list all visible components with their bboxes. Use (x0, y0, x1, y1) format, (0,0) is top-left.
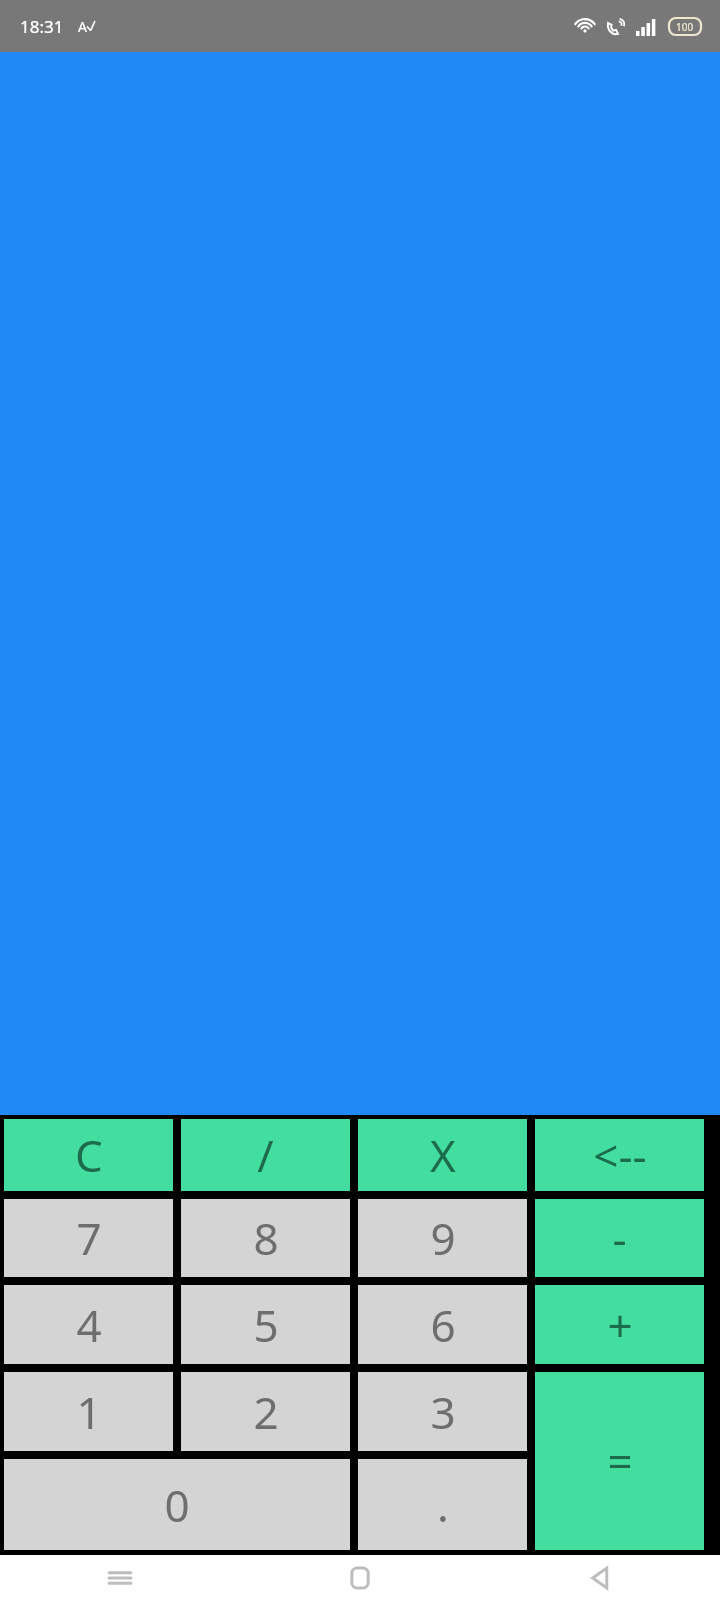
staticText: 7 (76, 1208, 102, 1268)
staticText: / (257, 1125, 274, 1185)
button[interactable]: Back (480, 1555, 720, 1600)
button[interactable]: 5 (181, 1285, 350, 1364)
staticText: C (75, 1125, 103, 1185)
button[interactable]: 2 (181, 1372, 350, 1451)
staticText: 4 (76, 1295, 102, 1355)
staticText: 1 (76, 1382, 102, 1442)
button[interactable]: X (358, 1119, 527, 1191)
staticText: = (607, 1431, 633, 1491)
staticText: 18:31 (20, 15, 64, 38)
button[interactable]: / (181, 1119, 350, 1191)
staticText: . (437, 1475, 449, 1535)
button[interactable]: Home (240, 1555, 480, 1600)
staticText: <-- (593, 1125, 647, 1185)
staticText: 100 (676, 20, 694, 34)
staticText: 0 (164, 1475, 190, 1535)
button[interactable]: 4 (4, 1285, 173, 1364)
staticText: X (430, 1125, 456, 1185)
staticText: 3 (430, 1382, 456, 1442)
staticText: 8 (253, 1208, 279, 1268)
button[interactable]: 1 (4, 1372, 173, 1451)
button[interactable]: 9 (358, 1199, 527, 1277)
button[interactable]: Backspace (535, 1119, 704, 1191)
staticText: A (78, 17, 87, 36)
staticText: 6 (430, 1295, 456, 1355)
staticText: 5 (253, 1295, 279, 1355)
button[interactable]: 7 (4, 1199, 173, 1277)
button[interactable]: + (535, 1285, 704, 1364)
button[interactable]: Recent apps (0, 1555, 240, 1600)
button[interactable]: C (4, 1119, 173, 1191)
button[interactable]: 8 (181, 1199, 350, 1277)
staticText: + (607, 1295, 633, 1355)
button[interactable]: 0 (4, 1459, 350, 1550)
staticText: 9 (430, 1208, 456, 1268)
button[interactable]: - (535, 1199, 704, 1277)
staticText: - (612, 1208, 627, 1268)
button[interactable]: = (535, 1372, 704, 1550)
button[interactable]: 3 (358, 1372, 527, 1451)
button[interactable]: 6 (358, 1285, 527, 1364)
staticText: 2 (253, 1382, 279, 1442)
button[interactable]: . (358, 1459, 527, 1550)
